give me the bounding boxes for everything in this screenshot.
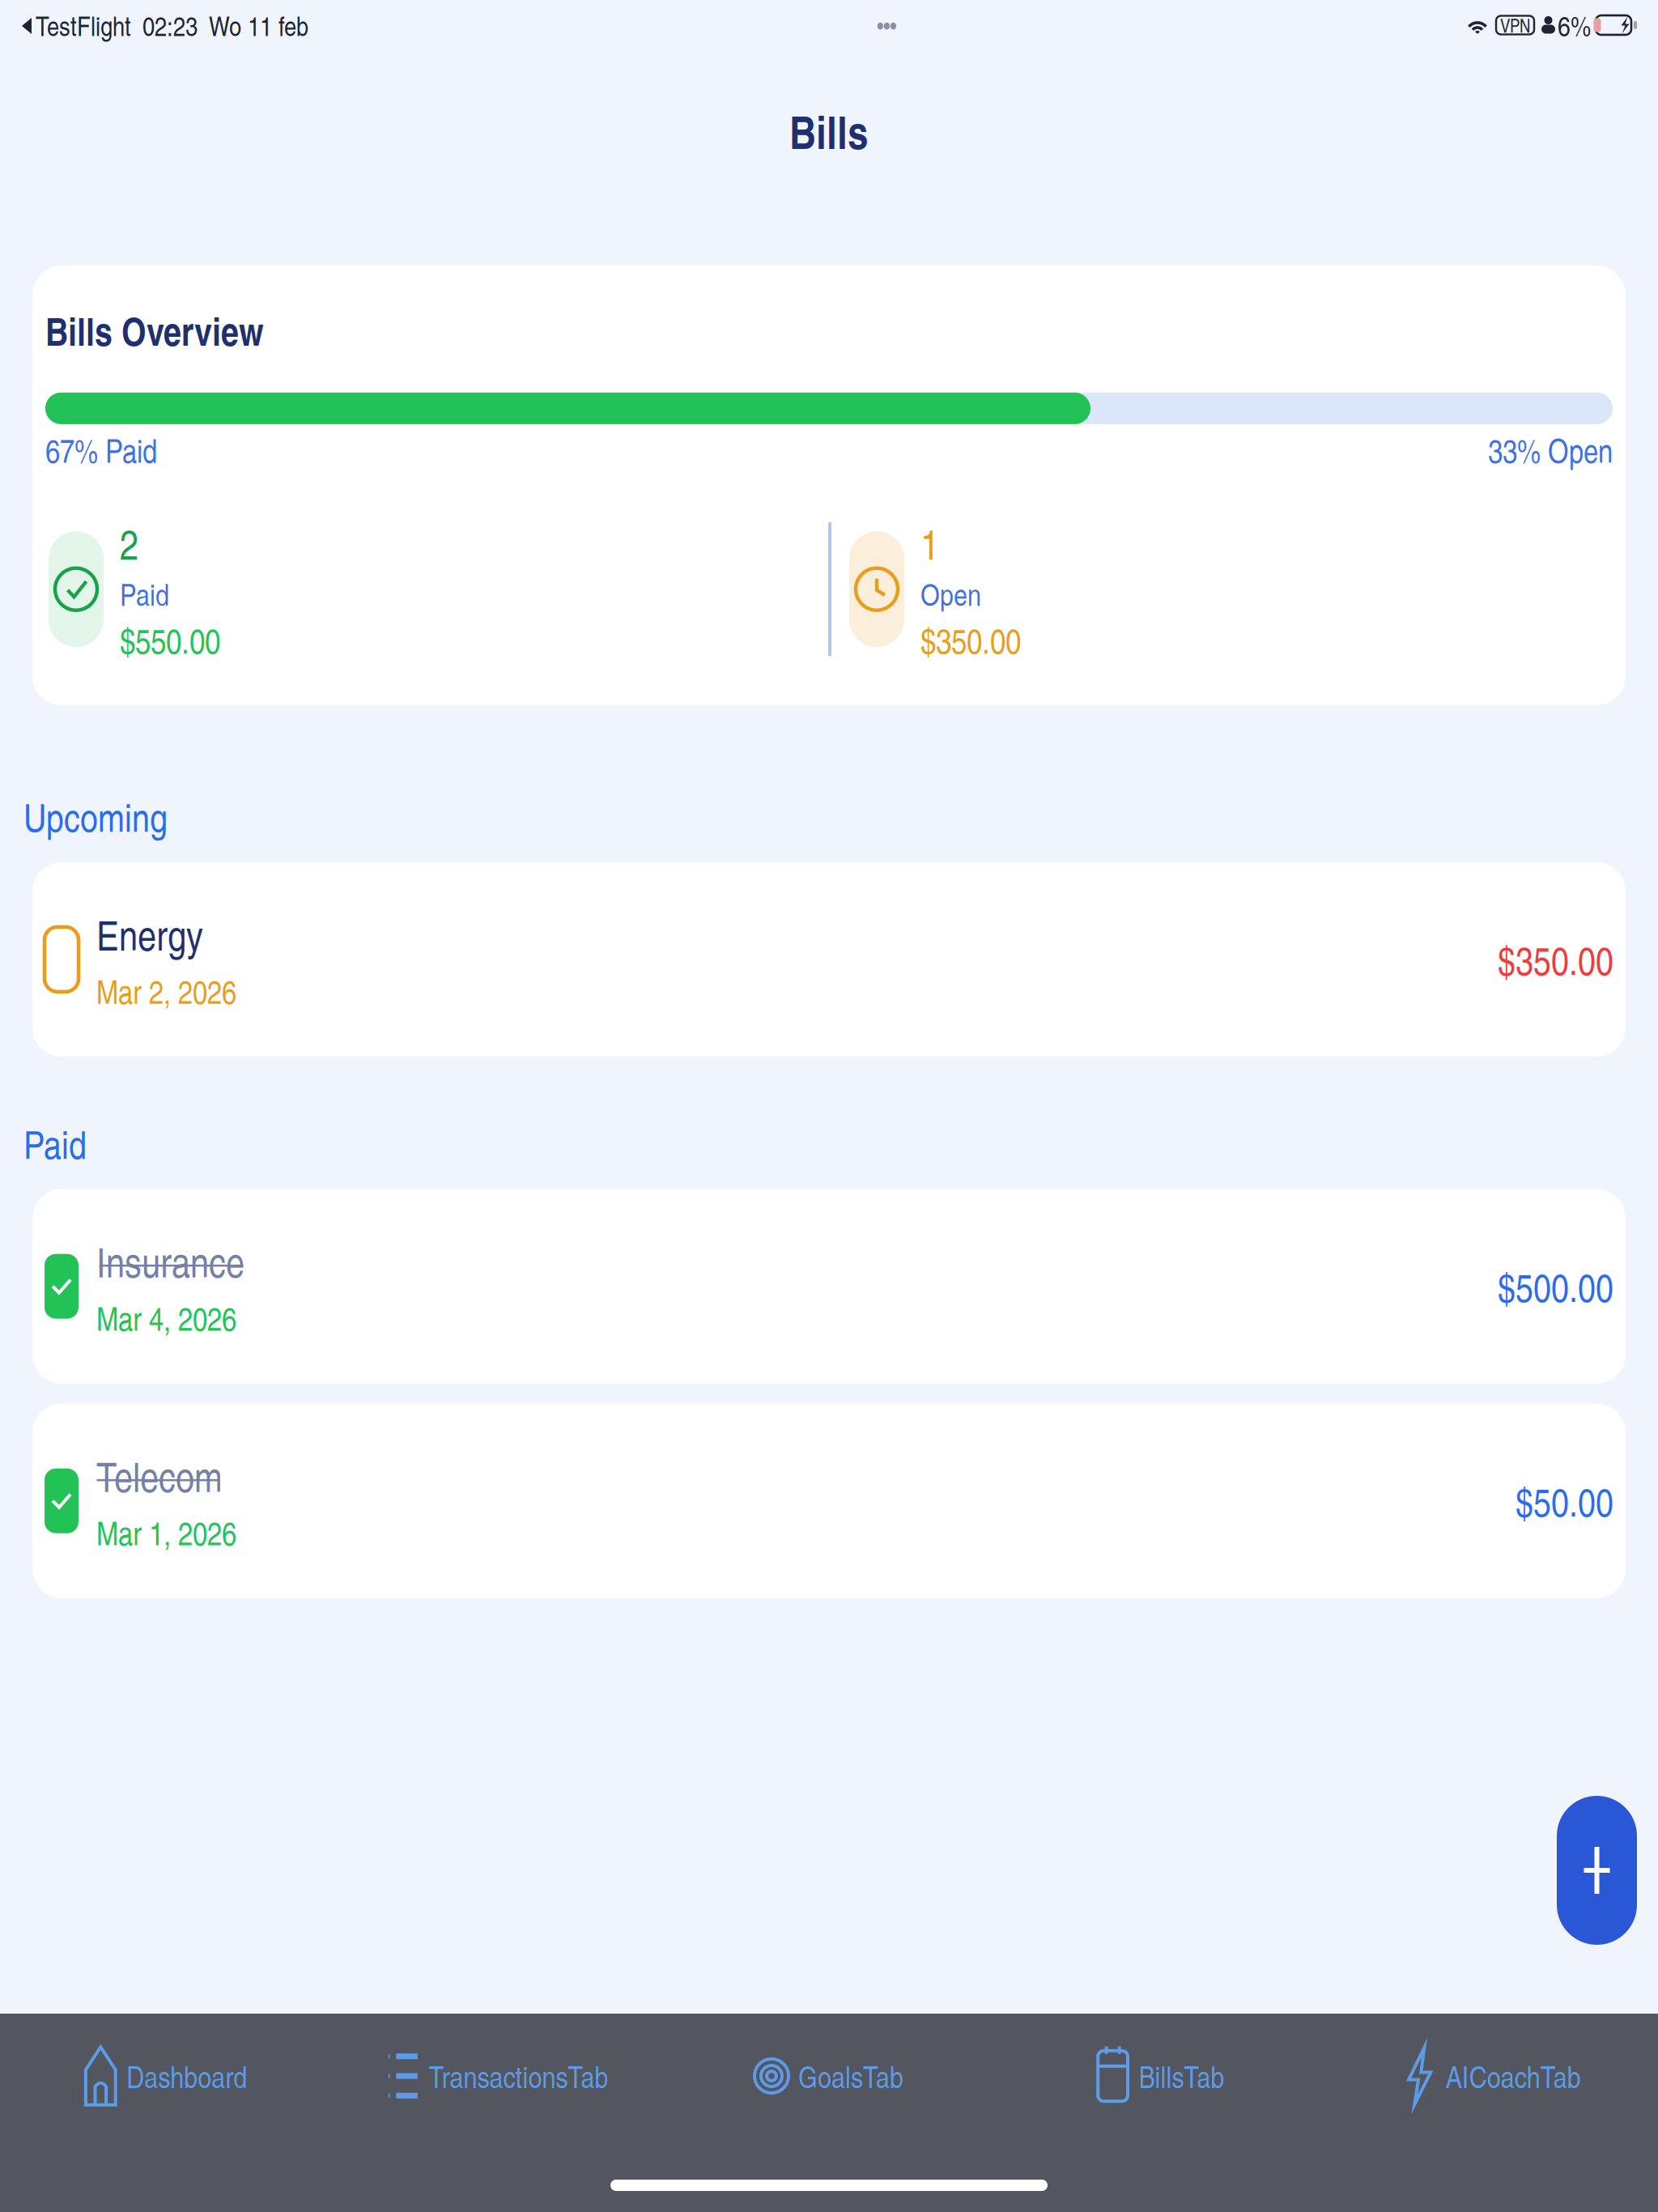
staticText: TestFlight bbox=[36, 7, 131, 44]
staticText: Paid bbox=[23, 1116, 87, 1170]
staticText: Telecom bbox=[96, 1447, 223, 1504]
staticText: $550.00 bbox=[120, 616, 220, 663]
staticText: Mar 4, 2026 bbox=[96, 1295, 236, 1340]
staticText: 6% bbox=[1558, 6, 1591, 44]
staticText: 02:23 bbox=[142, 7, 198, 44]
staticText: Open bbox=[920, 573, 981, 614]
staticText: GoalsTab bbox=[798, 2055, 903, 2097]
staticText: $350.00 bbox=[1498, 933, 1613, 986]
staticText: Energy bbox=[96, 906, 203, 962]
staticText: VPN bbox=[1500, 13, 1530, 38]
staticText: 67% Paid bbox=[45, 427, 157, 472]
button[interactable]: Energy bbox=[32, 862, 1626, 1057]
button[interactable]: TransactionsTab bbox=[332, 2028, 663, 2124]
staticText: Dashboard bbox=[127, 2055, 247, 2097]
staticText: Bills Overview bbox=[45, 303, 264, 358]
staticText: 33% Open bbox=[1488, 427, 1613, 472]
button[interactable]: GoalsTab bbox=[663, 2028, 995, 2124]
staticText: BillsTab bbox=[1139, 2055, 1225, 2097]
staticText: Mar 1, 2026 bbox=[96, 1510, 236, 1554]
staticText: $350.00 bbox=[920, 616, 1021, 663]
staticText: 1 bbox=[920, 515, 939, 571]
button[interactable]: Telecom bbox=[32, 1404, 1626, 1598]
button[interactable]: BillsTab bbox=[995, 2028, 1326, 2124]
staticText: Insurance bbox=[96, 1233, 244, 1289]
button[interactable]: Dashboard bbox=[0, 2028, 332, 2124]
staticText: $500.00 bbox=[1498, 1260, 1613, 1313]
staticText: TransactionsTab bbox=[429, 2055, 608, 2097]
staticText: Bills bbox=[789, 99, 869, 163]
staticText: 2 bbox=[120, 515, 138, 571]
button[interactable]: AICoachTab bbox=[1326, 2028, 1658, 2124]
staticText: Paid bbox=[120, 573, 169, 614]
button[interactable]: Insurance bbox=[32, 1189, 1626, 1383]
staticText: $50.00 bbox=[1516, 1474, 1613, 1528]
staticText: Wo 11 feb bbox=[209, 7, 308, 44]
staticText: Mar 2, 2026 bbox=[96, 969, 236, 1013]
staticText: Upcoming bbox=[23, 790, 168, 843]
staticText: AICoachTab bbox=[1446, 2055, 1581, 2097]
staticText: ••• bbox=[877, 10, 897, 40]
button[interactable]: Add bill bbox=[1557, 1796, 1637, 1945]
